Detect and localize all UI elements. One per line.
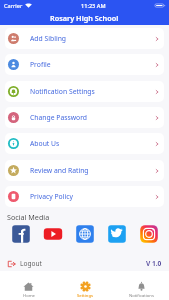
staticText: Add Sibling [30, 34, 67, 43]
staticText: Carrier [4, 2, 23, 10]
staticText: V 1.0 [146, 259, 162, 268]
staticText: Privacy Policy [30, 192, 73, 201]
staticText: Rosary High School [50, 13, 119, 23]
button[interactable]: Profile [5, 54, 164, 75]
button[interactable]: Privacy Policy [5, 186, 164, 207]
button[interactable]: Twitter [107, 224, 127, 244]
staticText: Notification Settings [30, 87, 95, 96]
staticText: Review and Rating [30, 166, 89, 175]
button[interactable]: Settings [57, 281, 113, 300]
staticText: Change Password [30, 113, 88, 122]
staticText: Notifications [129, 293, 154, 299]
staticText: Home [23, 293, 35, 299]
button[interactable]: About Us [5, 133, 164, 154]
button[interactable]: Add Sibling [5, 28, 164, 49]
button[interactable]: Website [75, 224, 95, 244]
button[interactable]: Notification Settings [5, 81, 164, 102]
staticText: Logout [20, 259, 42, 268]
button[interactable]: Logout [7, 259, 42, 268]
staticText: Social Media [7, 212, 50, 222]
staticText: Profile [30, 60, 51, 69]
button[interactable]: YouTube [43, 224, 63, 244]
staticText: 11:23 AM [81, 2, 106, 10]
staticText: Settings [77, 293, 93, 299]
button[interactable]: Review and Rating [5, 160, 164, 181]
button[interactable]: Facebook [11, 224, 31, 244]
staticText: About Us [30, 139, 60, 148]
button[interactable]: Home [0, 281, 57, 300]
button[interactable]: Instagram [139, 224, 159, 244]
button[interactable]: Notifications [113, 281, 169, 300]
button[interactable]: Change Password [5, 107, 164, 128]
